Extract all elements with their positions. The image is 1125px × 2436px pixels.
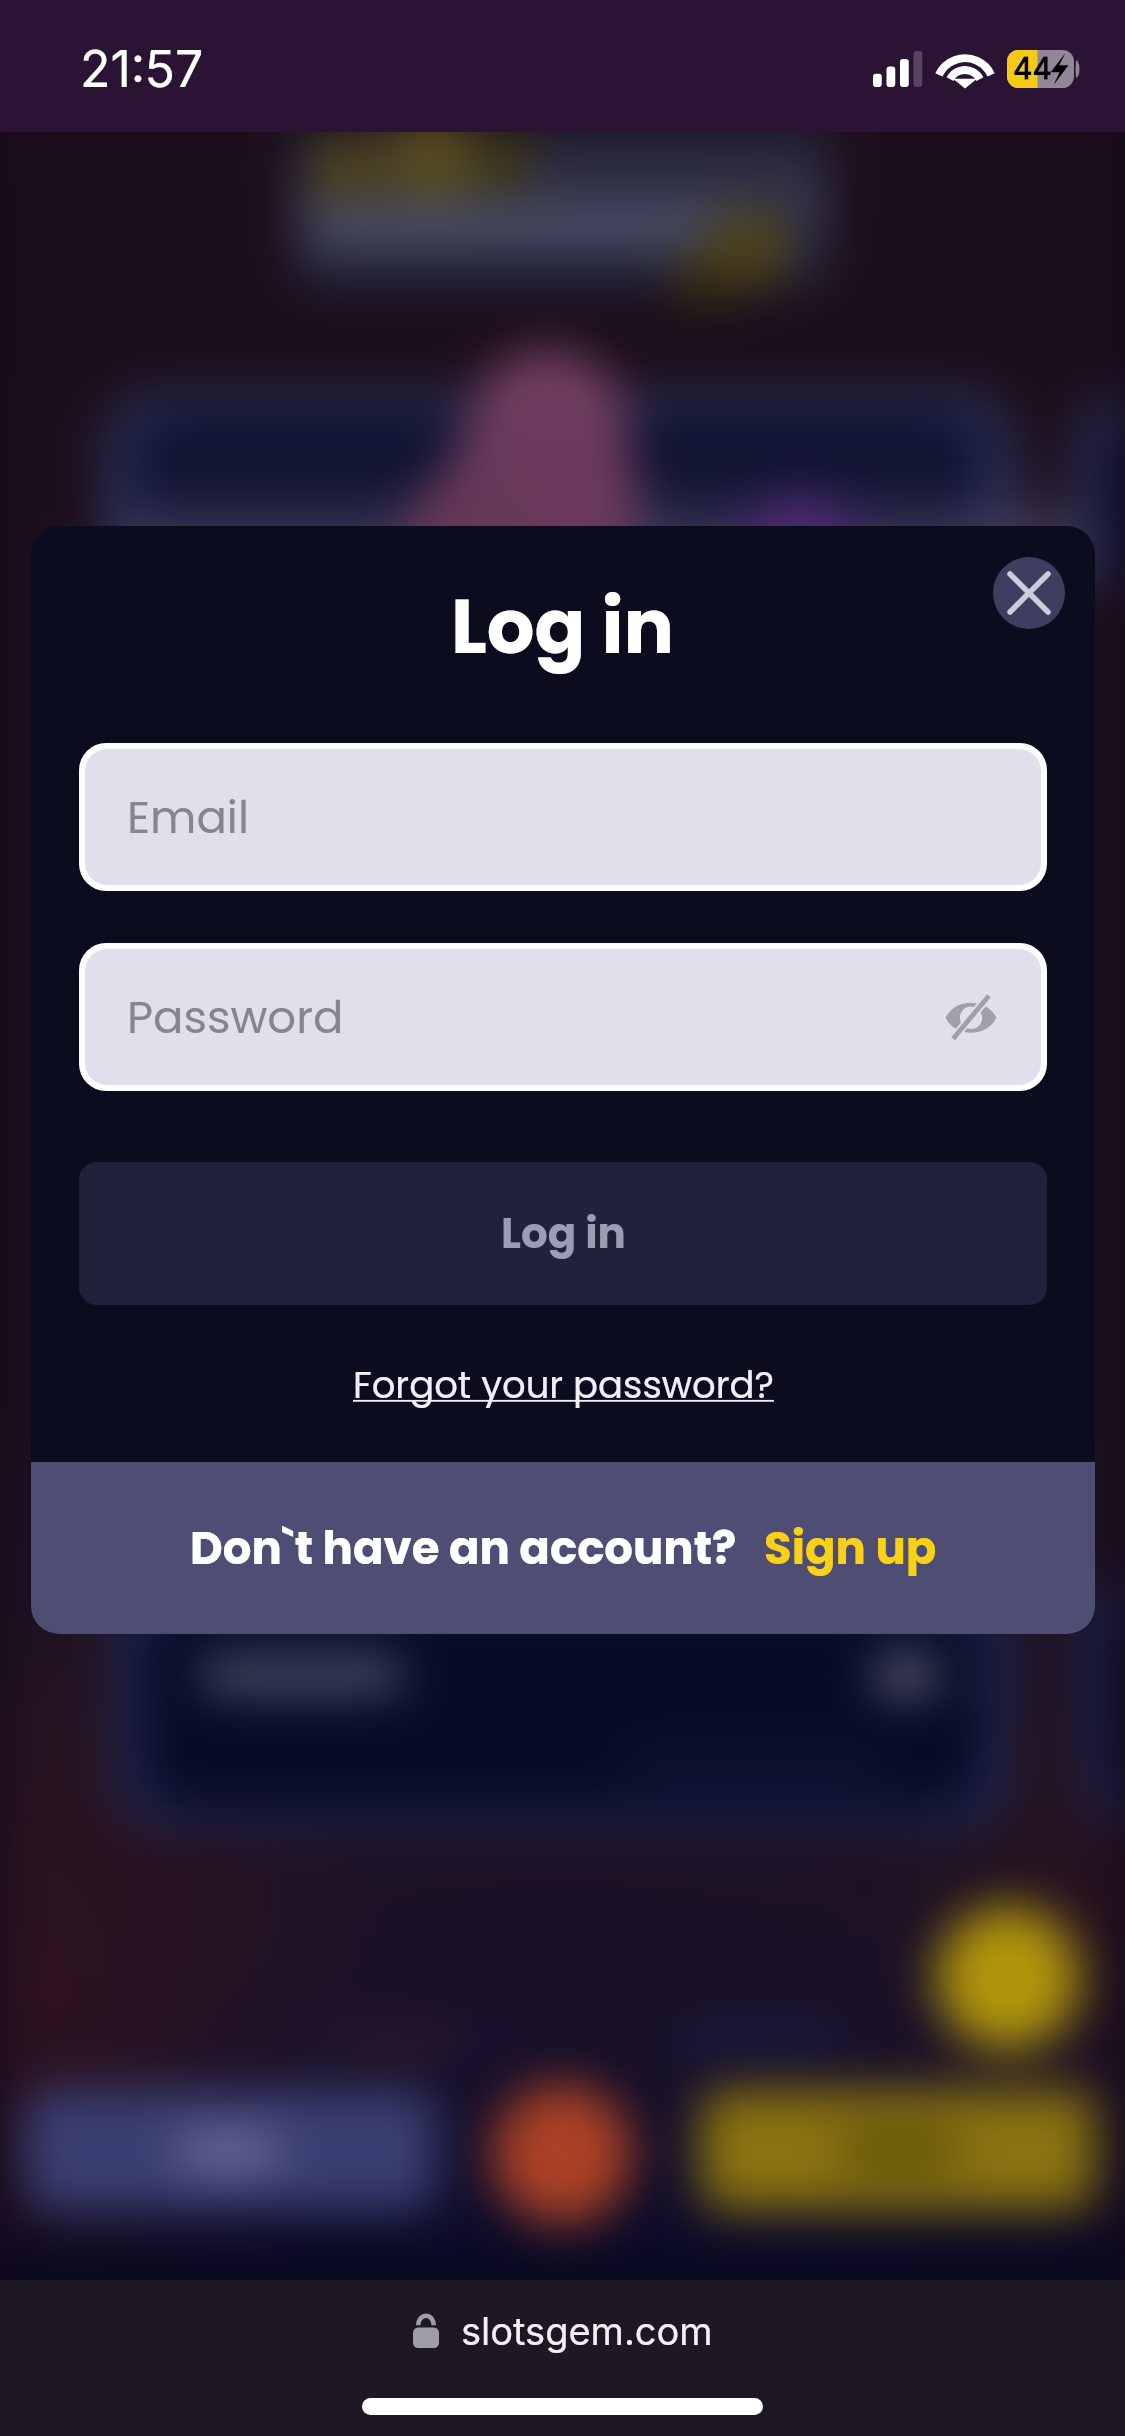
staticText: Log in: [451, 574, 675, 679]
staticText: Sign up: [764, 1517, 937, 1580]
staticText: Log in: [501, 1204, 626, 1263]
staticText: 21:57: [80, 39, 204, 99]
staticText: slotsgem.com: [461, 2308, 713, 2354]
button[interactable]: slotsgem.com: [413, 2308, 713, 2354]
button[interactable]: Log in: [79, 1162, 1047, 1305]
button[interactable]: Password: [85, 949, 1041, 1085]
button[interactable]: Show password: [939, 985, 1003, 1049]
staticText: Password: [127, 986, 344, 1049]
staticText: 44: [1013, 50, 1052, 86]
button[interactable]: Don`t have an account?: [31, 1462, 1095, 1634]
button[interactable]: Forgot your password?: [353, 1359, 774, 1411]
button[interactable]: Close: [993, 557, 1065, 629]
staticText: Don`t have an account?: [190, 1517, 737, 1580]
button[interactable]: Email: [85, 749, 1041, 885]
staticText: Email: [127, 786, 249, 849]
